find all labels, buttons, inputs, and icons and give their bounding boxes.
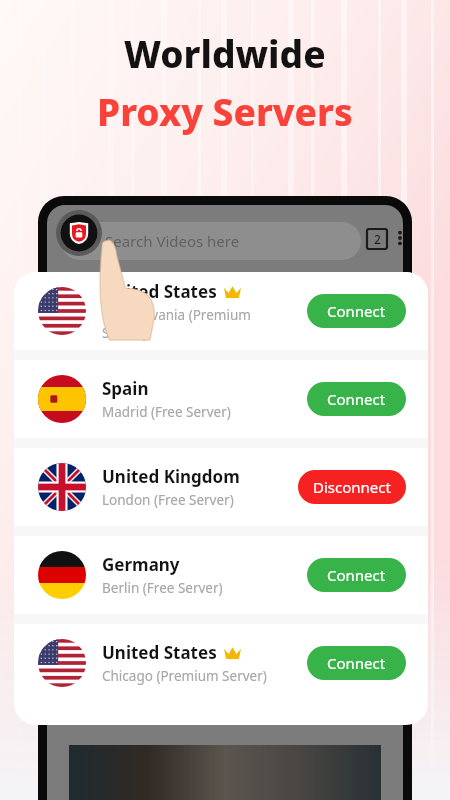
- button[interactable]: More options: [389, 227, 403, 249]
- staticText: Pennsylvania (Premium Server): [102, 306, 299, 342]
- staticText: Berlin (Free Server): [102, 579, 223, 597]
- button[interactable]: Germany: [14, 536, 428, 614]
- button[interactable]: Connect: [307, 382, 406, 416]
- button[interactable]: United Kingdom: [14, 448, 428, 526]
- staticText: London (Free Server): [102, 491, 234, 509]
- staticText: Worldwide: [124, 28, 326, 78]
- staticText: Madrid (Free Server): [102, 403, 231, 421]
- staticText: Spain: [102, 377, 149, 400]
- staticText: United States: [102, 280, 217, 303]
- staticText: Connect: [327, 565, 386, 585]
- staticText: 2: [374, 231, 381, 247]
- button[interactable]: Search Videos here: [61, 222, 361, 260]
- staticText: Disconnect: [313, 477, 391, 497]
- staticText: Connect: [327, 653, 386, 673]
- button[interactable]: United States: [14, 272, 428, 350]
- staticText: Connect: [327, 301, 386, 321]
- button[interactable]: Connect: [307, 558, 406, 592]
- staticText: Connect: [327, 389, 386, 409]
- staticText: Germany: [102, 553, 180, 576]
- button[interactable]: Disconnect: [298, 470, 406, 504]
- staticText: United Kingdom: [102, 465, 240, 488]
- button[interactable]: Connect: [307, 646, 406, 680]
- button[interactable]: Connect: [307, 294, 406, 328]
- staticText: United States: [102, 641, 217, 664]
- staticText: Chicago (Premium Server): [102, 667, 267, 685]
- button[interactable]: Tabs: [367, 229, 387, 249]
- staticText: Proxy Servers: [97, 86, 353, 136]
- button[interactable]: Spain: [14, 360, 428, 438]
- staticText: Search Videos here: [105, 231, 240, 251]
- button[interactable]: VPN shield: [56, 210, 102, 256]
- button[interactable]: United States: [14, 624, 428, 702]
